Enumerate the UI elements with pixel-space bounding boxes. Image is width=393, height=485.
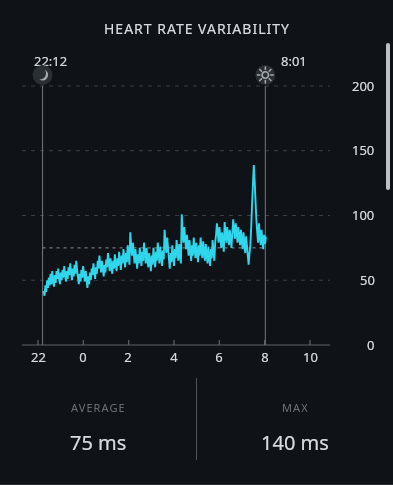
staticText: 22 bbox=[31, 348, 46, 366]
staticText: 8:01 bbox=[281, 52, 307, 70]
staticText: 0 bbox=[367, 336, 375, 354]
staticText: 4 bbox=[170, 348, 178, 366]
staticText: 2 bbox=[124, 348, 132, 366]
staticText: 10 bbox=[303, 348, 318, 366]
staticText: MAX bbox=[282, 400, 309, 415]
staticText: 6 bbox=[215, 348, 223, 366]
button[interactable] bbox=[0, 0, 393, 485]
staticText: 150 bbox=[352, 141, 375, 159]
staticText: 8 bbox=[261, 348, 269, 366]
button[interactable]: AVERAGE bbox=[0, 378, 196, 483]
button[interactable]: MAX bbox=[197, 378, 393, 483]
button[interactable]: HEART RATE VARIABILITY bbox=[0, 19, 393, 38]
staticText: 22:12 bbox=[34, 52, 68, 70]
staticText: 75 ms bbox=[70, 429, 127, 456]
staticText: 200 bbox=[352, 77, 375, 95]
staticText: AVERAGE bbox=[71, 400, 126, 415]
staticText: 0 bbox=[79, 348, 87, 366]
staticText: 50 bbox=[360, 271, 375, 289]
staticText: HEART RATE VARIABILITY bbox=[104, 19, 290, 38]
staticText: 140 ms bbox=[261, 429, 329, 456]
staticText: 100 bbox=[352, 206, 375, 224]
